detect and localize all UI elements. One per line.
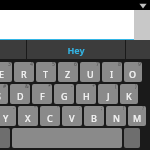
staticText: H [83,90,90,102]
button[interactable]: Space [12,128,122,148]
staticText: V [69,112,75,124]
staticText: U [87,68,94,80]
button[interactable]: 3 [0,62,12,82]
staticText: Z [65,68,71,80]
staticText: 9 [138,62,141,68]
staticText: B [91,112,97,124]
staticText: & [25,84,29,90]
button[interactable]: 5 [36,62,56,82]
staticText: ! [123,106,125,112]
staticText: X [25,112,31,124]
button[interactable]: + [76,84,96,104]
staticText: D [17,90,24,102]
staticText: 4 [30,62,33,68]
staticText: I [110,68,114,80]
staticText: + [92,84,95,90]
button[interactable]: Enter [124,128,140,148]
staticText: ( [115,84,117,90]
button[interactable]: ( [98,84,118,104]
staticText: 5 [52,62,55,68]
staticText: S [0,90,1,102]
button[interactable]: 7 [80,62,100,82]
staticText: G [61,90,68,102]
staticText: E [0,68,5,80]
staticText: 3 [8,62,11,68]
button[interactable]: ! [106,106,126,126]
button[interactable]: 8 [102,62,122,82]
button[interactable]: Symbols [0,128,10,148]
button[interactable]: ) [120,84,138,104]
staticText: " [34,106,37,112]
staticText: - [13,106,15,112]
button[interactable]: Hey [27,40,125,59]
staticText: ; [101,106,103,112]
button[interactable]: & [10,84,30,104]
staticText: - [71,84,73,90]
button[interactable]: 9 [124,62,142,82]
staticText: T [43,68,49,80]
button[interactable]: ? [128,106,146,126]
button[interactable]: - [0,106,16,126]
staticText: O [129,68,137,80]
button[interactable]: ' [40,106,60,126]
staticText: ? [142,106,145,112]
button[interactable] [0,10,134,40]
staticText: 7 [96,62,99,68]
button[interactable]: 6 [58,62,78,82]
staticText: J [107,90,110,102]
staticText: C [47,112,53,124]
staticText: 6 [74,62,77,68]
staticText: * [48,84,51,90]
button[interactable]: - [54,84,74,104]
staticText: K [126,90,132,102]
button[interactable]: " [18,106,38,126]
staticText: R [21,68,27,80]
staticText: 8 [118,62,121,68]
button[interactable]: 4 [14,62,34,82]
staticText: ) [135,84,137,90]
other: Wi-Fi [139,2,147,9]
staticText: N [113,112,120,124]
staticText: Y [3,112,9,124]
staticText: Hey [67,44,85,56]
staticText: F [40,90,45,102]
staticText: : [79,106,81,112]
staticText: ' [57,106,59,112]
staticText: # [3,84,7,90]
staticText: M [133,112,142,124]
button[interactable]: * [32,84,52,104]
button[interactable]: ; [84,106,104,126]
button[interactable]: : [62,106,82,126]
button[interactable]: # [0,84,8,104]
